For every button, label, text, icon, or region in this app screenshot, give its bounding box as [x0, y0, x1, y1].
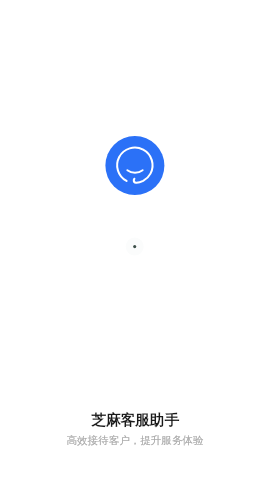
button[interactable]: 芝麻客服助手 — [100, 130, 170, 200]
staticText: 高效接待客户，提升服务体验 — [0, 434, 270, 447]
staticText: 芝麻客服助手 — [0, 411, 270, 429]
